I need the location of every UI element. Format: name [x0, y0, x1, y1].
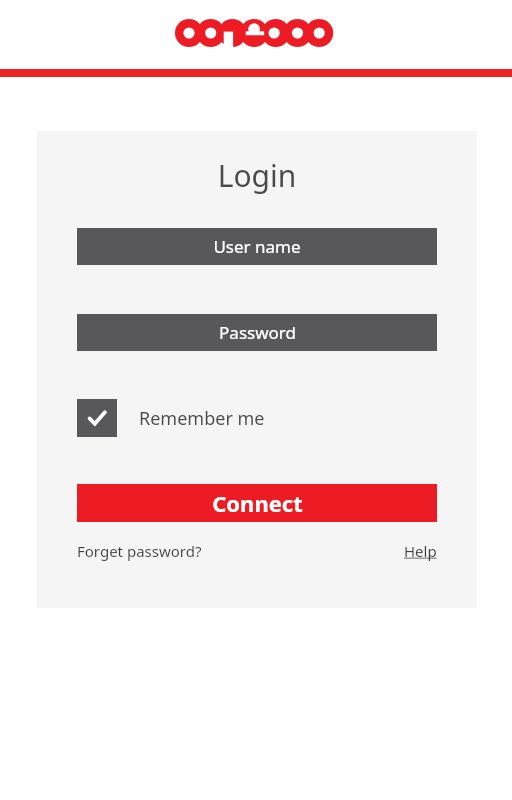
- staticText: Login: [37, 155, 477, 196]
- button[interactable]: Help: [404, 537, 437, 565]
- button[interactable]: Remember me: [77, 399, 265, 437]
- other: Ooredoo: [175, 19, 337, 47]
- staticText: Connect: [212, 488, 303, 518]
- staticText: Forget password?: [77, 541, 202, 561]
- staticText: User name: [213, 235, 301, 258]
- button[interactable]: Password: [77, 314, 437, 351]
- staticText: Password: [219, 321, 296, 344]
- button[interactable]: User name: [77, 228, 437, 265]
- button[interactable]: Forget password?: [77, 537, 202, 565]
- staticText: Remember me: [139, 406, 265, 431]
- staticText: Help: [404, 541, 437, 561]
- button[interactable]: Connect: [77, 484, 437, 522]
